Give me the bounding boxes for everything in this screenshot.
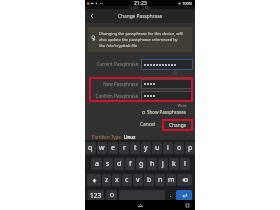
staticText: z	[105, 175, 109, 185]
button[interactable]: Home	[135, 200, 145, 210]
button[interactable]: j	[158, 158, 168, 170]
button[interactable]: y	[141, 142, 151, 154]
staticText: also update the passphrase referenced by	[99, 37, 178, 42]
button[interactable]: c	[122, 174, 132, 186]
staticText: 100%	[182, 1, 193, 6]
button[interactable]: r	[119, 142, 129, 154]
staticText: Linux	[124, 134, 136, 140]
button[interactable]: 123	[88, 190, 104, 200]
staticText: New Passphrase	[88, 81, 138, 87]
staticText: l	[184, 159, 186, 169]
staticText: d	[117, 159, 122, 169]
staticText: b	[147, 175, 152, 185]
button[interactable]: Passphrase field	[141, 59, 193, 70]
staticText: Change	[169, 122, 187, 129]
button[interactable]: Passphrase field	[141, 79, 193, 89]
button[interactable]: o	[174, 142, 184, 154]
button[interactable]: Recents	[183, 201, 191, 209]
button[interactable]: Passphrase field	[141, 91, 193, 101]
staticText: s	[106, 159, 110, 169]
staticText: .	[170, 192, 172, 199]
staticText: w	[99, 143, 105, 153]
staticText: Partition Type	[92, 134, 121, 140]
button[interactable]: Back	[85, 9, 99, 23]
staticText: q	[88, 143, 93, 153]
staticText: a	[95, 159, 99, 169]
staticText: Weak	[85, 103, 187, 108]
staticText: 21:23	[134, 0, 147, 6]
staticText: f	[129, 159, 132, 169]
staticText: h	[150, 159, 155, 169]
staticText: x	[115, 175, 119, 185]
button[interactable]: s	[103, 158, 113, 170]
button[interactable]: Enter	[176, 190, 192, 200]
staticText: Show Passphrases	[147, 109, 186, 115]
button[interactable]: .	[167, 190, 174, 200]
staticText: e	[111, 143, 115, 153]
staticText: r	[123, 143, 126, 153]
staticText: n	[158, 175, 163, 185]
button[interactable]: a	[91, 158, 102, 170]
button[interactable]: t	[130, 142, 140, 154]
button[interactable]: f	[125, 158, 135, 170]
staticText: u	[155, 143, 160, 153]
staticText: 123	[90, 191, 102, 200]
button[interactable]: p	[185, 142, 195, 154]
button[interactable]: v	[133, 174, 143, 186]
staticText: the /etc/crypttab file	[99, 43, 138, 48]
button[interactable]: Backspace	[177, 174, 192, 186]
button[interactable]: e	[108, 142, 118, 154]
button[interactable]: u	[152, 142, 162, 154]
staticText: p	[188, 143, 193, 153]
button[interactable]: Cancel	[137, 119, 157, 130]
staticText: Changing the passphrase for this device,…	[99, 31, 183, 36]
button[interactable]: n	[155, 174, 165, 186]
staticText: Current Passphrase	[88, 61, 138, 67]
button[interactable]: d	[114, 158, 124, 170]
staticText: j	[162, 159, 164, 169]
staticText: k	[172, 159, 176, 169]
button[interactable]: i	[163, 142, 173, 154]
staticText: Confirm Passphrase	[88, 93, 138, 99]
button[interactable]: Change	[162, 119, 193, 131]
staticText: 14 KB/s · 5 KB/s	[129, 6, 151, 9]
button[interactable]: Show Passphrases	[142, 109, 186, 115]
staticText: m	[168, 175, 175, 185]
staticText: c	[125, 175, 129, 185]
staticText: y	[144, 143, 148, 153]
button[interactable]: Shift	[87, 174, 101, 186]
button[interactable]: x	[112, 174, 121, 186]
button[interactable]: k	[169, 158, 179, 170]
staticText: v	[136, 175, 140, 185]
button[interactable]: m	[166, 174, 176, 186]
button[interactable]: g	[136, 158, 146, 170]
button[interactable]: l	[180, 158, 190, 170]
button[interactable]: q	[85, 142, 96, 154]
staticText: i	[167, 143, 169, 153]
button[interactable]: w	[97, 142, 107, 154]
button[interactable]: Emoji	[106, 190, 117, 200]
staticText: o	[177, 143, 182, 153]
button[interactable]: z	[102, 174, 111, 186]
button[interactable]: b	[144, 174, 154, 186]
staticText: t	[134, 143, 137, 153]
staticText: g	[139, 159, 144, 169]
staticText: Change Passphrase	[118, 13, 163, 20]
staticText: Cancel	[140, 121, 155, 128]
button[interactable]: h	[147, 158, 157, 170]
